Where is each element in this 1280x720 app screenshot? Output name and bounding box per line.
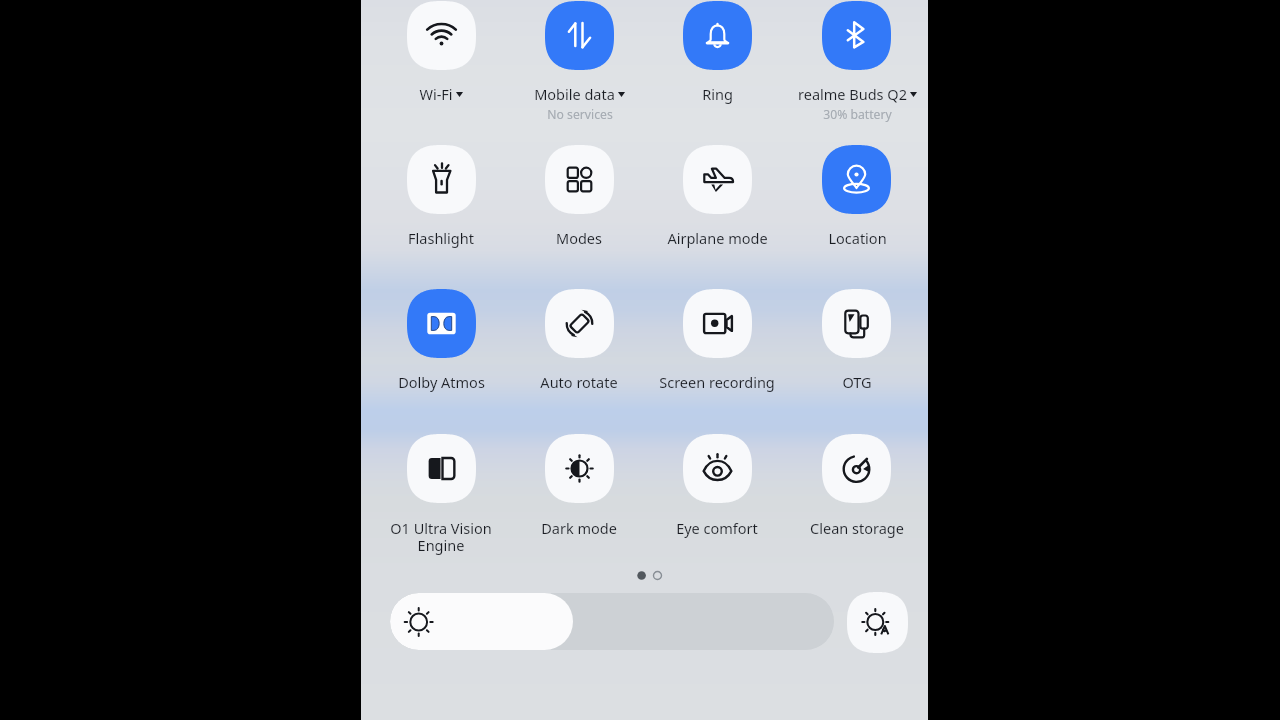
staticText: Dark mode xyxy=(541,518,617,538)
button[interactable]: Screen recording xyxy=(683,289,752,358)
staticText: O1 Ultra Vision Engine xyxy=(390,518,492,555)
staticText: Eye comfort xyxy=(676,518,758,538)
staticText: Clean storage xyxy=(810,518,904,538)
button[interactable]: Auto rotate xyxy=(545,289,614,358)
button[interactable]: Dolby Atmos xyxy=(407,289,476,358)
button[interactable]: Airplane mode xyxy=(683,145,752,214)
staticText: Auto rotate xyxy=(540,372,618,392)
button[interactable]: Flashlight xyxy=(407,145,476,214)
staticText: OTG xyxy=(842,372,872,392)
button[interactable]: Location xyxy=(822,145,891,214)
button[interactable]: Mobile data xyxy=(545,1,614,70)
button[interactable]: Clean storage xyxy=(822,434,891,503)
button[interactable]: Dark mode xyxy=(545,434,614,503)
staticText: No services xyxy=(547,106,613,123)
button[interactable]: Ring xyxy=(683,1,752,70)
staticText: Airplane mode xyxy=(667,228,768,248)
button[interactable]: OTG xyxy=(822,289,891,358)
staticText: realme Buds Q2 xyxy=(798,84,907,104)
staticText: Flashlight xyxy=(408,228,474,248)
staticText: 30% battery xyxy=(823,106,892,123)
staticText: Location xyxy=(828,228,887,248)
staticText: Wi-Fi xyxy=(419,84,453,104)
staticText: Screen recording xyxy=(659,372,775,392)
button[interactable]: O1 Ultra Vision Engine xyxy=(407,434,476,503)
button[interactable]: Modes xyxy=(545,145,614,214)
button[interactable]: Brightness slider xyxy=(390,593,834,650)
button[interactable]: Eye comfort xyxy=(683,434,752,503)
staticText: Dolby Atmos xyxy=(398,372,485,392)
staticText: Ring xyxy=(702,84,733,104)
button[interactable]: realme Buds Q2 xyxy=(822,1,891,70)
staticText: Mobile data xyxy=(534,84,615,104)
button[interactable]: Auto brightness xyxy=(847,592,908,653)
button[interactable]: Wi-Fi xyxy=(407,1,476,70)
staticText: Modes xyxy=(556,228,602,248)
